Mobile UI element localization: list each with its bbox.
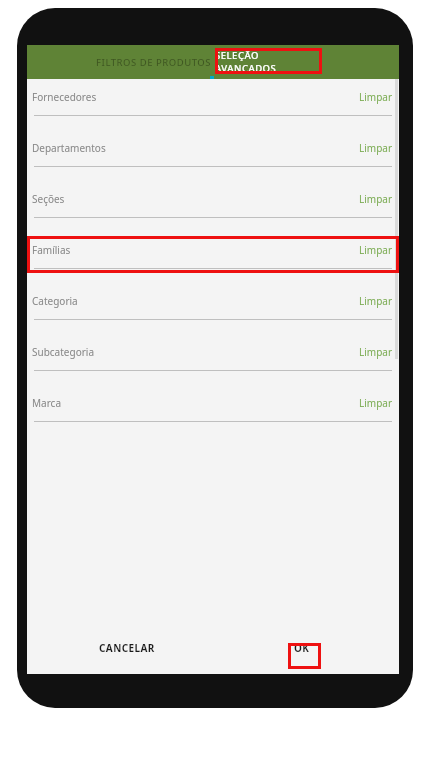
button[interactable]: Fornecedores [27, 79, 399, 130]
staticText: CANCELAR [99, 641, 155, 655]
staticText: Limpar [359, 396, 393, 410]
staticText: Limpar [359, 345, 393, 359]
staticText: Categoria [32, 294, 78, 308]
staticText: Seções [32, 192, 65, 206]
button[interactable]: Limpar [359, 294, 393, 308]
button[interactable]: Limpar [359, 192, 393, 206]
button[interactable]: FILTROS DE PRODUTOS [95, 45, 212, 79]
staticText: Limpar [359, 141, 393, 155]
staticText: Limpar [359, 192, 393, 206]
button[interactable]: Seções [27, 181, 399, 232]
button[interactable]: Limpar [359, 243, 393, 257]
staticText: Subcategoria [32, 345, 94, 359]
staticText: Limpar [359, 90, 393, 104]
staticText: Limpar [359, 243, 393, 257]
button[interactable]: Limpar [359, 141, 393, 155]
staticText: FILTROS DE PRODUTOS [96, 56, 211, 69]
staticText: OK [294, 641, 310, 655]
button[interactable]: Marca [27, 385, 399, 436]
button[interactable]: Departamentos [27, 130, 399, 181]
button[interactable]: Subcategoria [27, 334, 399, 385]
button[interactable]: OK [285, 633, 319, 663]
staticText: Limpar [359, 294, 393, 308]
button[interactable]: Limpar [359, 345, 393, 359]
button[interactable]: Limpar [359, 396, 393, 410]
button[interactable]: Famílias [27, 232, 399, 283]
staticText: Famílias [32, 243, 71, 257]
staticText: Departamentos [32, 141, 106, 155]
button[interactable]: Categoria [27, 283, 399, 334]
staticText: SELEÇÃO AVANÇADOS [215, 49, 323, 75]
button[interactable]: SELEÇÃO AVANÇADOS [215, 45, 323, 79]
staticText: Marca [32, 396, 62, 410]
button[interactable]: CANCELAR [97, 631, 157, 665]
button[interactable]: Limpar [359, 90, 393, 104]
staticText: Fornecedores [32, 90, 97, 104]
